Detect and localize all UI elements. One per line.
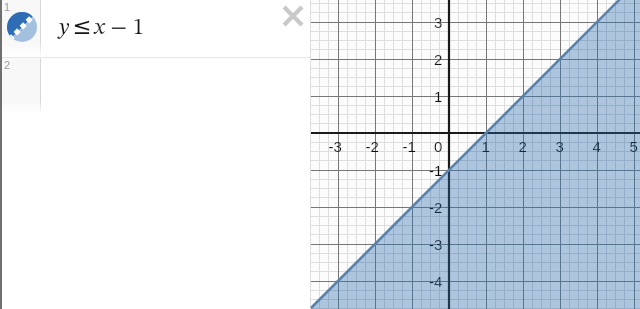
staticText: 2 bbox=[4, 59, 11, 71]
button[interactable]: 2 bbox=[0, 58, 311, 115]
staticText: y ≤ x − 1 bbox=[59, 13, 145, 40]
staticText: 1 bbox=[4, 1, 11, 13]
button[interactable]: Delete expression bbox=[279, 2, 307, 30]
button[interactable]: 1 bbox=[0, 0, 311, 57]
